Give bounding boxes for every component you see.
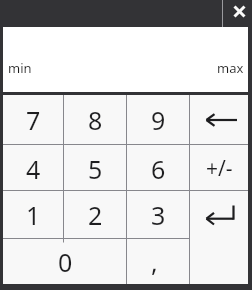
button[interactable]: 6 [127, 145, 189, 192]
button[interactable]: 8 [64, 95, 127, 145]
button[interactable] [190, 95, 248, 145]
button[interactable]: 9 [127, 95, 189, 145]
staticText: 1 [26, 198, 41, 232]
staticText: 9 [151, 103, 166, 137]
staticText: 2 [88, 198, 103, 232]
button[interactable]: 7 [3, 95, 64, 145]
staticText: 0 [58, 245, 73, 279]
staticText: 3 [151, 198, 166, 232]
button[interactable]: 5 [64, 145, 127, 192]
button[interactable]: 1 [3, 191, 64, 239]
button[interactable]: 3 [127, 191, 189, 239]
button[interactable]: 2 [64, 191, 127, 239]
button[interactable] [190, 191, 248, 284]
staticText: , [151, 245, 158, 279]
staticText: min [8, 59, 32, 77]
staticText: max [217, 59, 244, 77]
button[interactable]: 4 [3, 145, 64, 192]
staticText: 4 [26, 152, 41, 186]
staticText: +/- [206, 154, 233, 183]
staticText: 7 [26, 103, 41, 137]
button[interactable] [223, 0, 252, 27]
staticText: 6 [151, 152, 166, 186]
staticText: 8 [88, 103, 103, 137]
staticText: 5 [88, 152, 103, 186]
button[interactable]: , [127, 239, 189, 284]
button[interactable]: +/- [190, 145, 248, 192]
button[interactable]: 0 [3, 239, 127, 284]
